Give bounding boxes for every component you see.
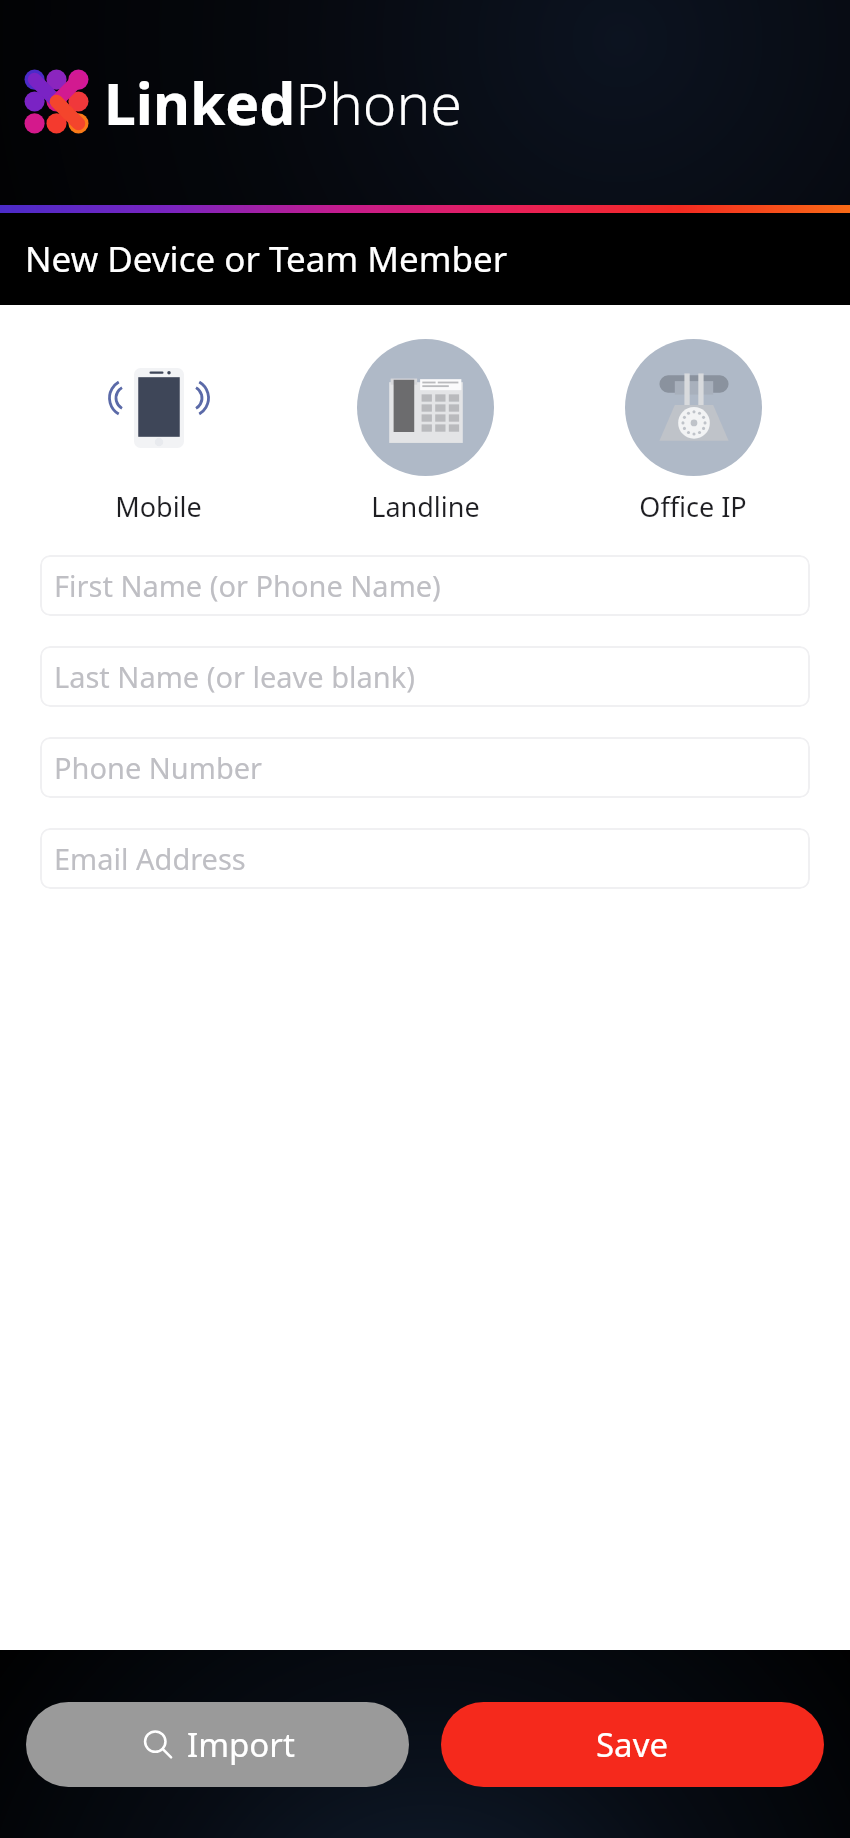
button[interactable]: Email Address <box>40 828 810 889</box>
staticText: Save <box>596 1722 669 1767</box>
button[interactable]: Last Name (or leave blank) <box>40 646 810 707</box>
staticText: First Name (or Phone Name) <box>54 566 441 605</box>
button[interactable]: Landline <box>315 339 535 525</box>
staticText: LinkedPhone <box>104 64 462 142</box>
button[interactable]: Import <box>26 1702 409 1787</box>
button[interactable]: Phone Number <box>40 737 810 798</box>
staticText: Mobile <box>115 488 202 525</box>
button[interactable]: Mobile <box>48 339 268 525</box>
staticText: Office IP <box>639 488 747 525</box>
button[interactable]: Save <box>441 1702 824 1787</box>
staticText: Landline <box>371 488 480 525</box>
button[interactable]: Office IP <box>583 339 803 525</box>
staticText: Import <box>187 1722 295 1767</box>
button[interactable]: First Name (or Phone Name) <box>40 555 810 616</box>
staticText: Phone Number <box>54 748 263 787</box>
staticText: New Device or Team Member <box>25 235 508 283</box>
staticText: Email Address <box>54 839 246 878</box>
staticText: Last Name (or leave blank) <box>54 657 415 696</box>
